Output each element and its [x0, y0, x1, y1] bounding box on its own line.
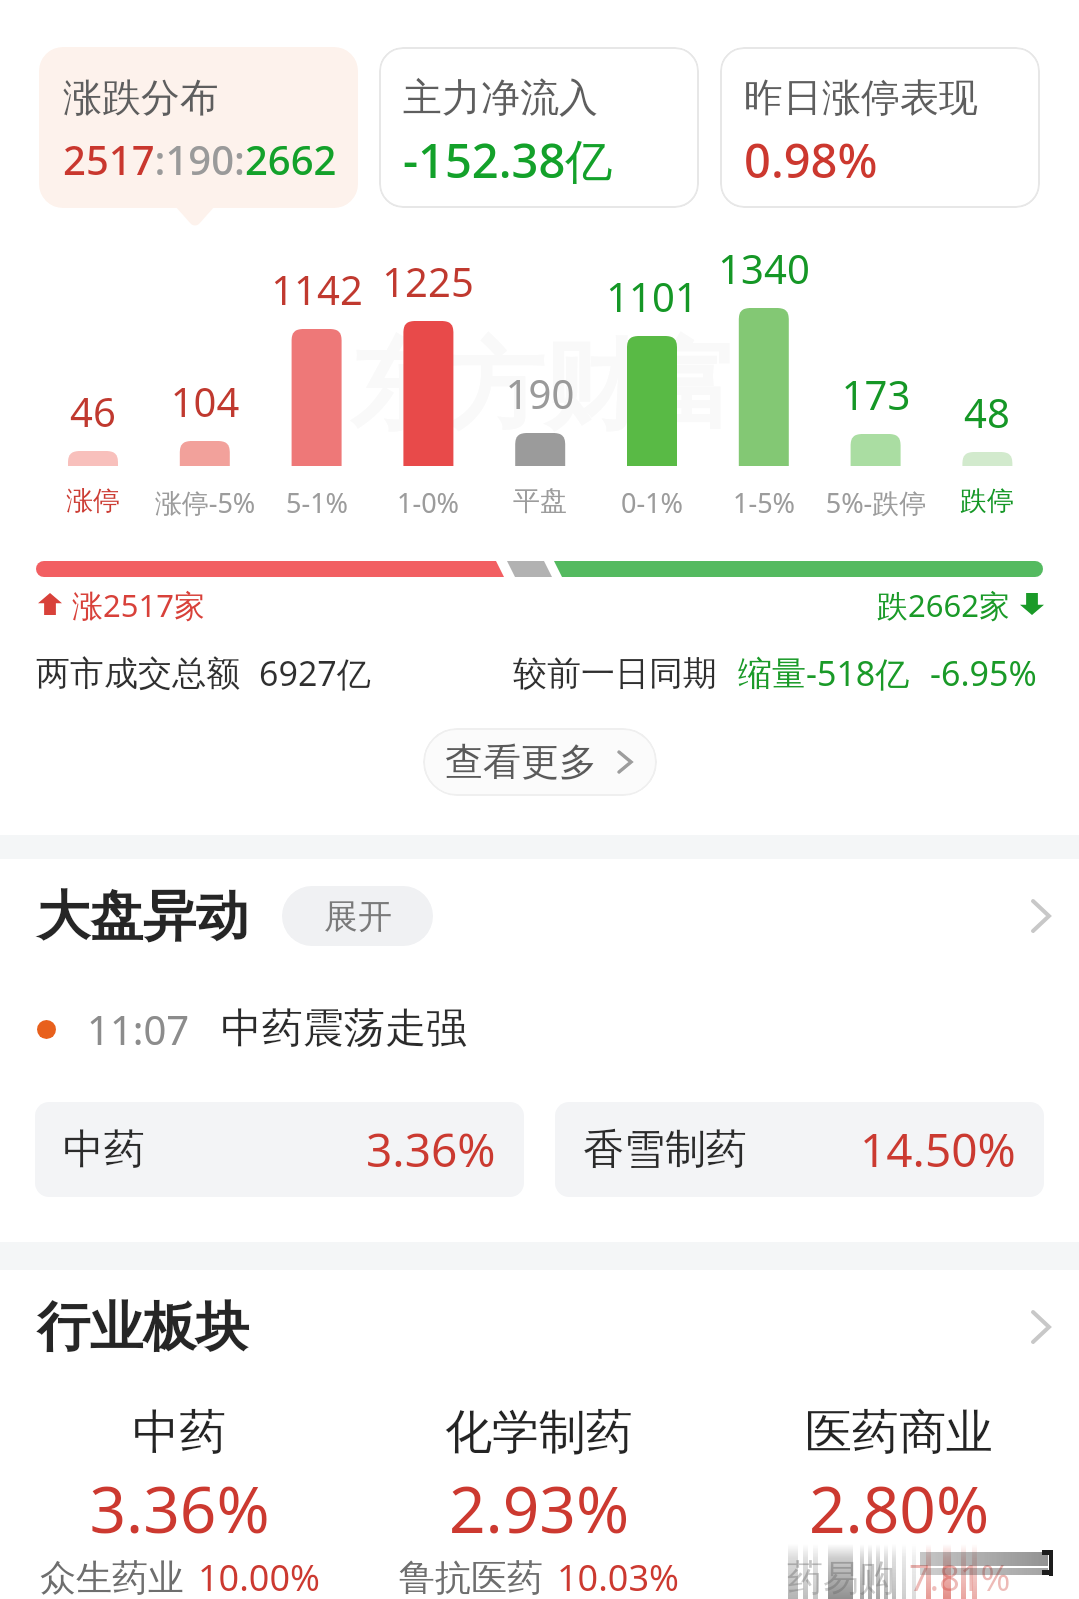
button[interactable]: 展开 — [282, 886, 433, 946]
staticText: 48 — [907, 385, 1067, 439]
button[interactable]: 中药 — [35, 1102, 524, 1197]
staticText: 涨停-5% — [125, 484, 285, 521]
staticText: 3.36% — [0, 1465, 359, 1552]
button[interactable]: 11:07 — [37, 999, 1079, 1059]
staticText: 医药商业 — [719, 1403, 1079, 1462]
staticText: 香雪制药 — [583, 1124, 747, 1176]
staticText: 14.50% — [860, 1118, 1016, 1181]
staticText: 1225 — [348, 254, 508, 308]
staticText: 查看更多 — [445, 738, 597, 786]
staticText: 鲁抗医药 — [399, 1555, 543, 1599]
staticText: 涨停 — [13, 484, 173, 518]
staticText: 缩量 — [738, 652, 806, 695]
button[interactable]: 5%-跌停 173 — [820, 250, 932, 520]
staticText: 涨跌分布 — [63, 73, 219, 122]
staticText: 化学制药 — [359, 1403, 719, 1462]
button[interactable]: 0-1% 1101 — [596, 250, 708, 520]
staticText: -152.38亿 — [403, 128, 613, 192]
staticText: -6.95% — [930, 650, 1037, 696]
staticText: 173 — [796, 367, 956, 421]
staticText: -518亿 — [806, 650, 910, 696]
staticText: 昨日涨停表现 — [744, 73, 978, 122]
staticText: 7.81% — [909, 1553, 1011, 1599]
staticText: 2.80% — [719, 1465, 1079, 1552]
staticText: 5-1% — [237, 484, 397, 521]
staticText: 1340 — [684, 241, 844, 295]
staticText: 190 — [460, 366, 620, 420]
staticText: 2.93% — [359, 1465, 719, 1552]
button[interactable]: 涨停-5% 104 — [149, 250, 261, 520]
button[interactable]: 1-5% 1340 — [708, 250, 820, 520]
staticText: 涨2517家 — [72, 584, 205, 624]
staticText: 中药 — [0, 1403, 359, 1462]
staticText: 104 — [125, 374, 285, 428]
staticText: 1142 — [237, 262, 397, 316]
button[interactable]: 查看更多 — [423, 728, 657, 796]
staticText: 10.03% — [557, 1553, 679, 1599]
button[interactable]: 1-0% 1225 — [373, 250, 485, 520]
staticText: 2517:190:2662 — [63, 132, 337, 186]
staticText: 0.98% — [744, 128, 878, 192]
staticText: 行业板块 — [37, 1294, 249, 1361]
staticText: 较前一日同期 — [513, 652, 717, 695]
staticText: 3.36% — [366, 1118, 496, 1181]
staticText: 1-5% — [684, 484, 844, 521]
button[interactable]: More — [1011, 1292, 1071, 1362]
staticText: 跌2662家 — [877, 584, 1010, 624]
staticText: 两市成交总额 — [36, 652, 240, 695]
staticText: 众生药业 — [40, 1555, 184, 1599]
staticText: 11:07 — [87, 1002, 190, 1056]
staticText: 展开 — [324, 895, 392, 938]
button[interactable]: 医药商业 — [719, 1398, 1079, 1598]
button[interactable]: More — [1011, 881, 1071, 951]
staticText: 平盘 — [460, 484, 620, 518]
staticText: 1-0% — [348, 484, 508, 521]
staticText: 1101 — [572, 269, 732, 323]
staticText: 主力净流入 — [403, 73, 598, 122]
button[interactable]: 平盘 190 — [484, 250, 596, 520]
button[interactable]: 化学制药 — [359, 1398, 719, 1598]
button[interactable]: 5-1% 1142 — [261, 250, 373, 520]
staticText: 10.00% — [198, 1553, 320, 1599]
button[interactable]: 主力净流入 — [379, 47, 699, 208]
staticText: 中药震荡走强 — [221, 1003, 467, 1055]
button[interactable]: 昨日涨停表现 — [720, 47, 1040, 208]
button[interactable]: 涨停 46 — [37, 250, 149, 520]
staticText: 大盘异动 — [37, 883, 249, 950]
staticText: 0-1% — [572, 484, 732, 521]
button[interactable]: 涨跌分布 — [39, 47, 358, 208]
staticText: 中药 — [63, 1124, 145, 1176]
staticText: 46 — [13, 384, 173, 438]
button[interactable]: 香雪制药 — [555, 1102, 1044, 1197]
staticText: 东方财富 — [350, 326, 738, 448]
staticText: 5%-跌停 — [796, 484, 956, 521]
button[interactable]: 跌停 48 — [932, 250, 1044, 520]
button[interactable]: 中药 — [0, 1398, 359, 1598]
staticText: 6927亿 — [259, 650, 371, 696]
staticText: 药易购 — [787, 1555, 895, 1599]
staticText: 跌停 — [907, 484, 1067, 518]
